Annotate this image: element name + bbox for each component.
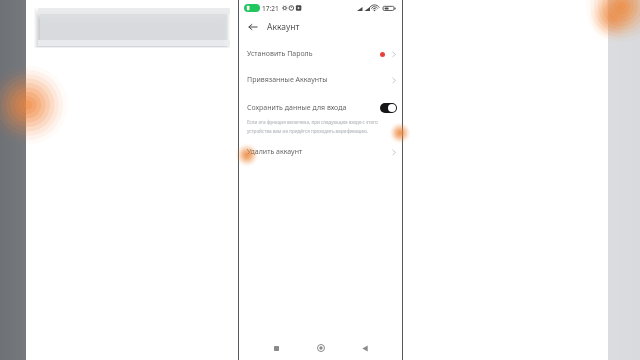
staticText: устройства вам не придётся проходить вер… <box>247 128 369 134</box>
button[interactable]: Сохранить данные для входа <box>380 103 397 113</box>
button[interactable]: Назад <box>245 19 261 35</box>
button[interactable]: Сохранить данные для входа <box>239 97 402 119</box>
staticText: Удалить аккаунт <box>247 147 303 157</box>
staticText: Сохранить данные для входа <box>247 103 347 113</box>
staticText: 17:21 <box>262 4 279 13</box>
button[interactable]: Удалить аккаунт <box>239 141 402 163</box>
button[interactable]: Главный экран <box>313 340 329 356</box>
staticText: Привязанные Аккаунты <box>247 75 328 85</box>
button[interactable]: Обзор <box>268 340 284 356</box>
staticText: Установить Пароль <box>247 49 313 59</box>
button[interactable]: Установить Пароль <box>239 43 402 65</box>
staticText: Аккаунт <box>267 21 300 33</box>
button[interactable]: Привязанные Аккаунты <box>239 69 402 91</box>
button[interactable]: Назад <box>357 340 373 356</box>
staticText: Если эта функция включена, при следующем… <box>247 119 378 125</box>
